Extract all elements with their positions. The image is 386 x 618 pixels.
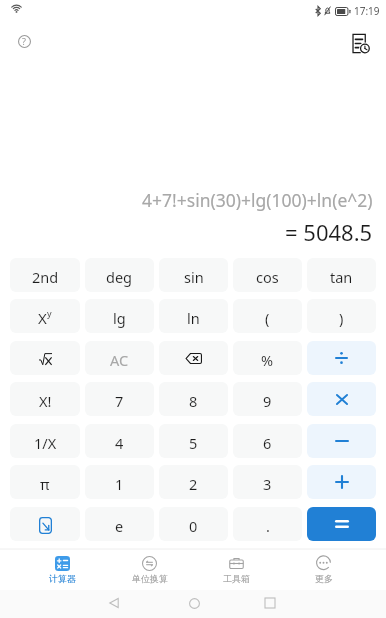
button[interactable]: Delete <box>159 341 228 375</box>
button[interactable]: 8 <box>159 382 228 416</box>
staticText: 5 <box>189 433 198 453</box>
button[interactable]: Standard mode <box>10 507 80 541</box>
other: Home <box>188 597 200 609</box>
button[interactable]: 3 <box>233 465 302 499</box>
button[interactable]: 6 <box>233 424 302 458</box>
button[interactable]: 9 <box>233 382 302 416</box>
staticText: 8 <box>189 391 198 411</box>
button[interactable]: e <box>85 507 154 541</box>
staticText: 9 <box>263 391 272 411</box>
staticText: 2 <box>189 474 198 494</box>
button[interactable] <box>307 341 376 375</box>
button[interactable]: tan <box>307 258 376 292</box>
other: Equals <box>335 520 349 528</box>
staticText: ( <box>265 308 270 328</box>
button[interactable]: lg <box>85 299 154 333</box>
staticText: . <box>266 516 270 536</box>
staticText: X <box>38 308 47 328</box>
staticText: y <box>47 307 52 319</box>
staticText: X! <box>39 391 52 411</box>
button[interactable]: cos <box>233 258 302 292</box>
button[interactable]: Help <box>11 28 37 54</box>
staticText: 2nd <box>32 267 59 287</box>
button[interactable]: 4 <box>85 424 154 458</box>
button[interactable]: ln <box>159 299 228 333</box>
button[interactable]: % <box>233 341 302 375</box>
staticText: ) <box>339 308 344 328</box>
button[interactable]: . <box>233 507 302 541</box>
button[interactable]: X! <box>10 382 80 416</box>
staticText: 17:19 <box>354 4 380 18</box>
button[interactable] <box>307 424 376 458</box>
staticText: 3 <box>263 474 272 494</box>
staticText: AC <box>110 350 129 370</box>
staticText: 1/X <box>34 433 57 453</box>
staticText: tan <box>330 267 353 287</box>
button[interactable]: π <box>10 465 80 499</box>
button[interactable] <box>307 465 376 499</box>
staticText: lg <box>113 308 126 328</box>
staticText: 4+7!+sin(30)+lg(100)+ln(e^2) <box>142 188 373 212</box>
staticText: π <box>40 474 50 494</box>
other: Delete <box>185 353 202 364</box>
other: Standard mode <box>39 517 52 534</box>
staticText: e <box>115 516 124 536</box>
button[interactable]: ( <box>233 299 302 333</box>
staticText: 4 <box>115 433 124 453</box>
button[interactable]: Equals <box>307 507 376 541</box>
staticText: 1 <box>115 474 124 494</box>
button[interactable]: 1/X <box>10 424 80 458</box>
button[interactable]: History <box>346 29 374 57</box>
button[interactable]: 更多 <box>280 549 367 591</box>
other: Back <box>108 597 120 609</box>
staticText: 6 <box>263 433 272 453</box>
button[interactable]: 计算器 <box>19 549 106 591</box>
staticText: 7 <box>115 391 124 411</box>
button[interactable] <box>307 382 376 416</box>
staticText: sin <box>184 267 204 287</box>
button[interactable]: deg <box>85 258 154 292</box>
other: Recents <box>264 597 276 609</box>
button[interactable]: AC <box>85 341 154 375</box>
button[interactable]: X <box>10 299 80 333</box>
staticText: ? <box>22 35 26 47</box>
staticText: ln <box>187 308 200 328</box>
button[interactable] <box>10 341 80 375</box>
staticText: % <box>261 350 274 370</box>
button[interactable]: ) <box>307 299 376 333</box>
button[interactable]: 7 <box>85 382 154 416</box>
button[interactable]: 0 <box>159 507 228 541</box>
staticText: 更多 <box>315 573 333 584</box>
staticText: deg <box>106 267 133 287</box>
staticText: 工具箱 <box>223 573 250 584</box>
staticText: 计算器 <box>49 573 76 584</box>
button[interactable]: 工具箱 <box>193 549 280 591</box>
button[interactable]: 单位换算 <box>106 549 193 591</box>
button[interactable]: 1 <box>85 465 154 499</box>
button[interactable]: sin <box>159 258 228 292</box>
button[interactable]: 2 <box>159 465 228 499</box>
staticText: = 5048.5 <box>285 217 373 247</box>
button[interactable]: 5 <box>159 424 228 458</box>
button[interactable]: 2nd <box>10 258 80 292</box>
staticText: 0 <box>189 516 198 536</box>
staticText: 单位换算 <box>132 573 168 584</box>
staticText: cos <box>256 267 279 287</box>
